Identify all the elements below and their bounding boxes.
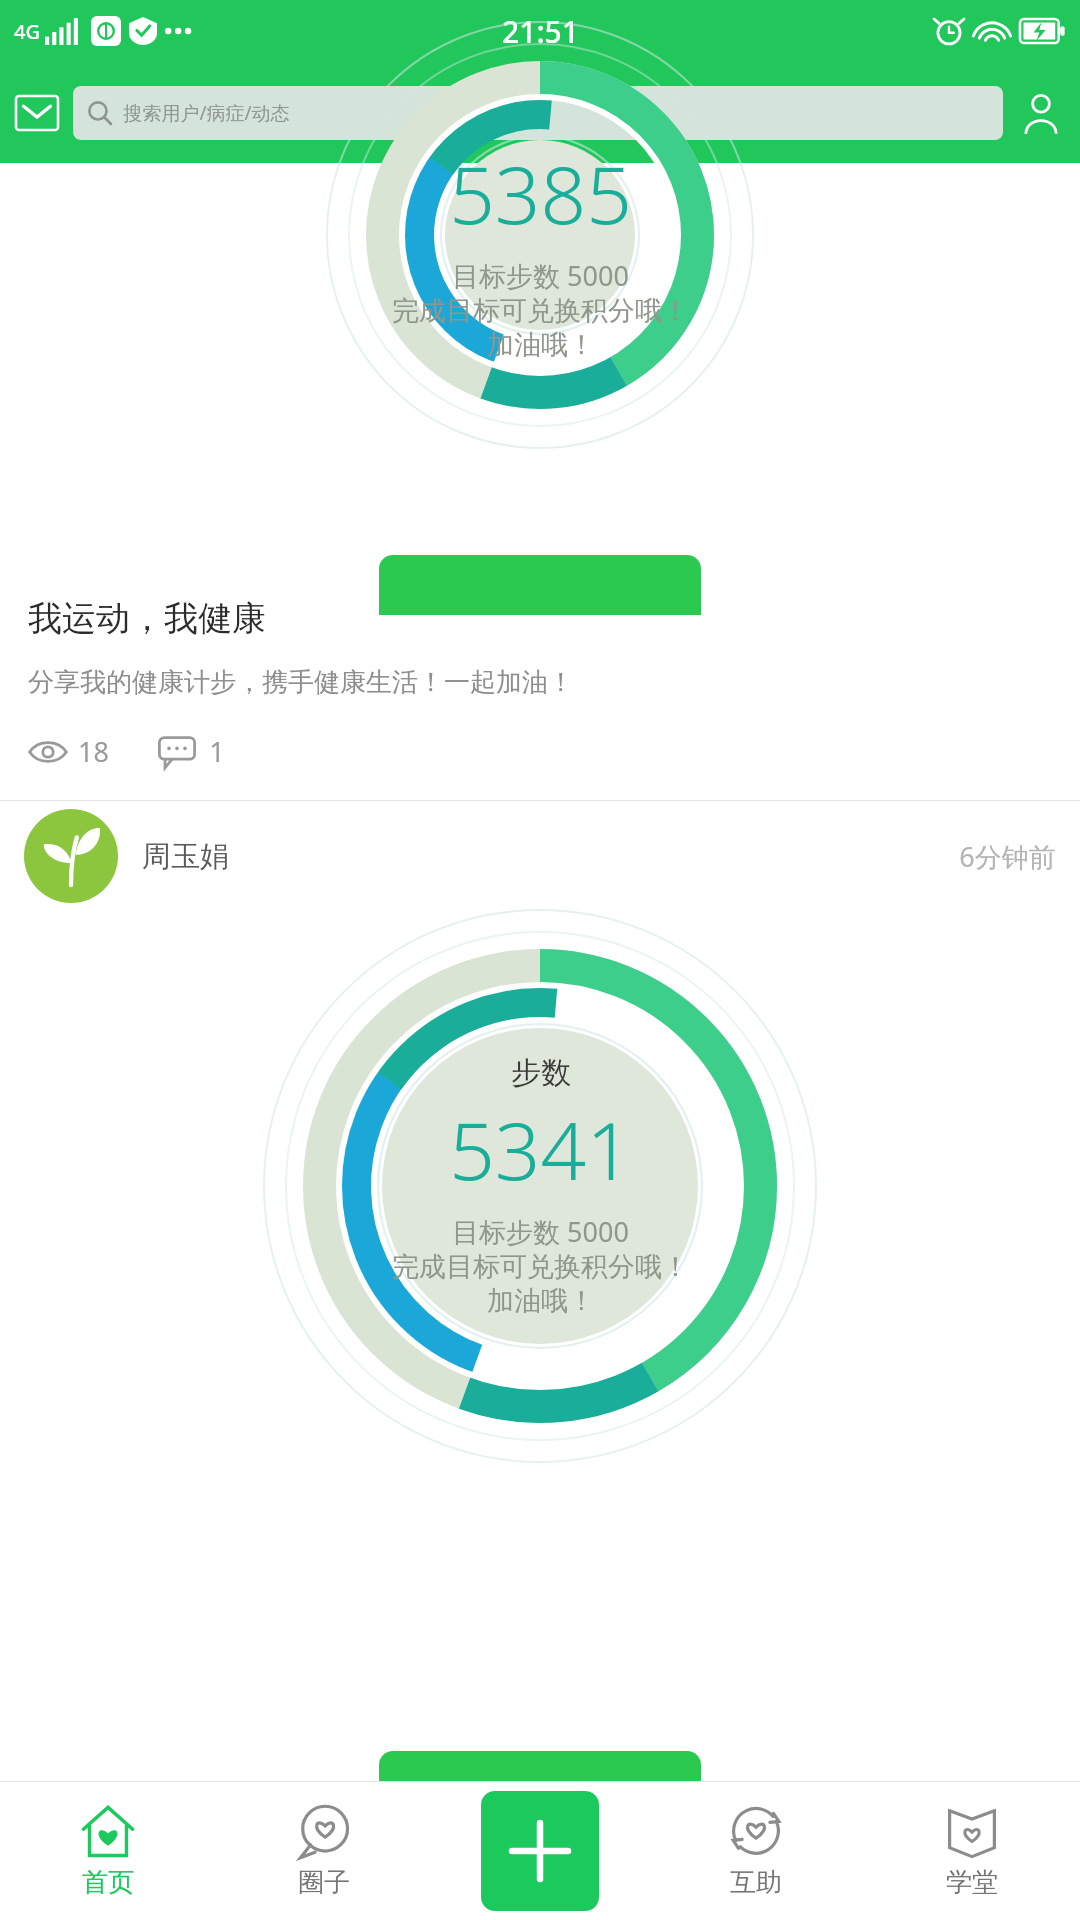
staticText: 21:51 — [502, 11, 579, 52]
staticText: 分享我的健康计步，携手健康生活！一起加油！ — [28, 666, 574, 699]
staticText: 1 — [209, 733, 225, 770]
staticText: 搜索用户/病症/动态 — [123, 100, 290, 126]
staticText: 互助 — [730, 1866, 782, 1899]
staticText: 完成目标可兑换积分哦！ — [392, 294, 689, 328]
staticText: 18 — [78, 733, 109, 770]
staticText: 5385 — [449, 138, 632, 247]
staticText: 圈子 — [298, 1866, 350, 1899]
staticText: 目标步数 5000 — [452, 1213, 629, 1250]
staticText: 4G — [14, 18, 40, 45]
button[interactable]: 周玉娟 — [24, 801, 1056, 911]
staticText: 学堂 — [946, 1866, 998, 1899]
button[interactable]: Profile — [1011, 83, 1071, 143]
staticText: 目标步数 5000 — [452, 257, 629, 294]
staticText: 周玉娟 — [142, 838, 229, 875]
staticText: 加油哦！ — [487, 328, 595, 362]
button[interactable]: 学堂 — [864, 1782, 1080, 1920]
button[interactable]: 18 — [28, 729, 109, 774]
staticText: 步数 — [511, 1054, 571, 1092]
staticText: 完成目标可兑换积分哦！ — [392, 1250, 689, 1284]
staticText: 5341 — [449, 1094, 632, 1203]
button[interactable]: 1 — [157, 729, 225, 774]
button[interactable]: 5385 — [0, 163, 1080, 597]
button[interactable]: 互助 — [648, 1782, 864, 1920]
button[interactable]: Messages — [9, 85, 65, 141]
staticText: 加油哦！ — [487, 1284, 595, 1318]
button[interactable]: 搜索用户/病症/动态 — [73, 86, 1003, 140]
button[interactable]: 首页 — [0, 1782, 216, 1920]
staticText: 我运动，我健康 — [28, 597, 266, 640]
staticText: 6分钟前 — [959, 838, 1056, 875]
button[interactable]: 圈子 — [216, 1782, 432, 1920]
button[interactable]: Create post — [481, 1791, 599, 1911]
staticText: 首页 — [82, 1866, 134, 1899]
